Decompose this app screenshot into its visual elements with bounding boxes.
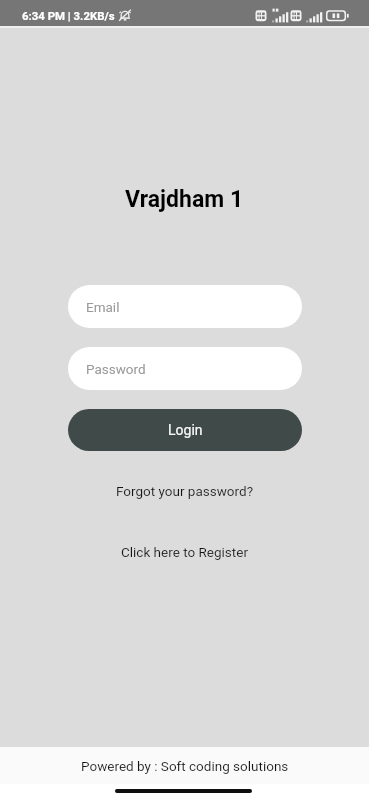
other: Home gesture bar: [115, 789, 252, 793]
staticText: Email: [86, 299, 120, 315]
button[interactable]: Login: [68, 409, 302, 451]
staticText: Powered by : Soft coding solutions: [81, 758, 289, 774]
staticText: 6:34 PM | 3.2KB/s: [22, 9, 115, 22]
button[interactable]: Password: [68, 347, 302, 390]
staticText: Password: [86, 361, 146, 377]
staticText: Forgot your password?: [116, 483, 254, 499]
staticText: Vrajdham 1: [125, 186, 244, 213]
button[interactable]: Forgot your password?: [108, 480, 262, 502]
staticText: Login: [168, 422, 203, 438]
button[interactable]: Email: [68, 285, 302, 328]
staticText: Click here to Register: [121, 544, 248, 560]
other: Alarm muted: [118, 9, 132, 22]
button[interactable]: Click here to Register: [113, 541, 256, 563]
